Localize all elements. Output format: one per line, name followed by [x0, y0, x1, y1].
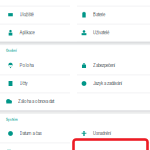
button[interactable]: Jazyk a zadávání: [75, 74, 148, 92]
button[interactable]: Usnadnění: [75, 124, 148, 142]
button[interactable]: Záloha a obnova dat: [0, 92, 110, 110]
staticText: Datum a čas: [19, 131, 41, 136]
button[interactable]: Poloha: [1, 56, 75, 74]
staticText: Poloha: [19, 63, 33, 68]
button[interactable]: Úložiště: [1, 6, 75, 24]
button[interactable]: Zabezpečení: [75, 56, 148, 74]
button[interactable]: Baterie: [75, 6, 148, 24]
staticText: Uživatelé: [93, 30, 109, 35]
button[interactable]: Účty: [1, 74, 75, 92]
staticText: Baterie: [93, 12, 105, 17]
button[interactable]: Uživatelé: [75, 24, 148, 42]
staticText: Úložiště: [19, 12, 33, 17]
staticText: Aplikace: [19, 30, 34, 35]
staticText: Jazyk a zadávání: [93, 81, 122, 86]
staticText: Účty: [19, 81, 27, 86]
staticText: Záloha a obnova dat: [18, 99, 54, 104]
staticText: Systém: [6, 118, 18, 121]
staticText: Zabezpečení: [93, 63, 115, 68]
button[interactable]: Tisk: [0, 143, 73, 150]
button[interactable]: Datum a čas: [1, 124, 75, 142]
staticText: Usnadnění: [93, 131, 111, 136]
staticText: Osobní: [6, 49, 17, 53]
button[interactable]: Aplikace: [1, 24, 75, 42]
